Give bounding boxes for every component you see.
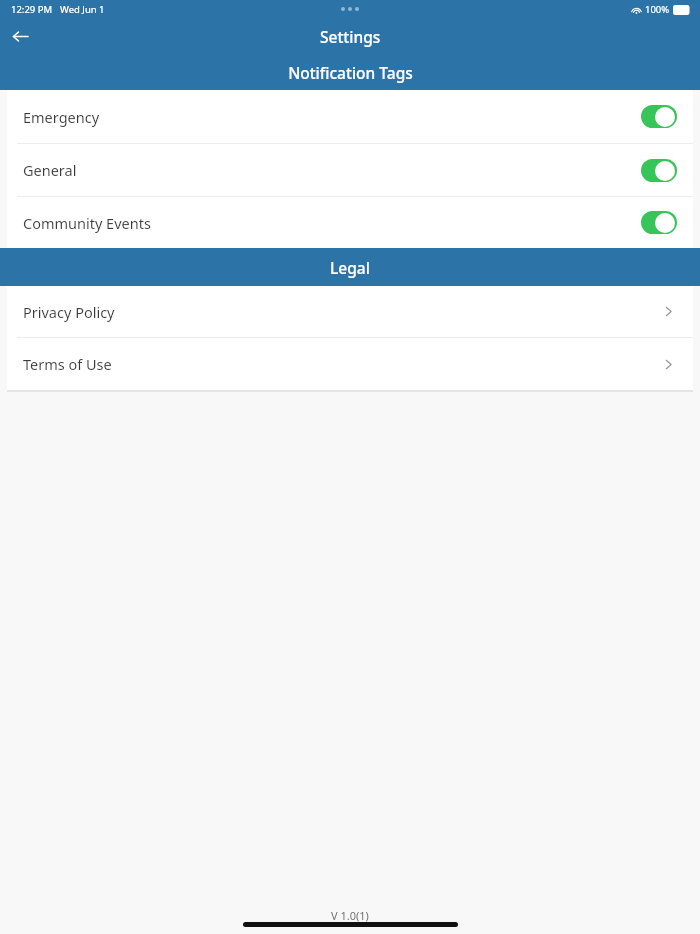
staticText: Settings [320, 26, 381, 47]
staticText: Emergency [23, 107, 641, 127]
button[interactable]: Terms of Use [7, 338, 693, 390]
staticText: Legal [330, 257, 370, 278]
staticText: V 1.0(1) [331, 908, 369, 923]
button[interactable]: Toggle [641, 159, 677, 182]
staticText: Community Events [23, 213, 641, 233]
staticText: General [23, 160, 641, 180]
staticText: 12:29 PM [11, 3, 53, 16]
button[interactable]: Toggle [641, 211, 677, 234]
button[interactable]: Back [6, 22, 34, 50]
button[interactable]: Privacy Policy [7, 286, 693, 337]
button[interactable]: Toggle [641, 105, 677, 128]
button[interactable]: General [7, 144, 693, 196]
staticText: 100% [645, 3, 670, 16]
staticText: Terms of Use [23, 354, 662, 374]
staticText: Wed Jun 1 [60, 3, 105, 16]
button[interactable]: Emergency [7, 90, 693, 143]
staticText: Privacy Policy [23, 302, 662, 322]
staticText: Notification Tags [288, 62, 413, 83]
button[interactable]: Community Events [7, 197, 693, 248]
